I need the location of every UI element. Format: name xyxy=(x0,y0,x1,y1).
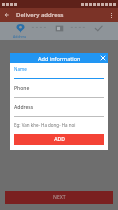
staticText: Eg: Van khe- Ha dong- Ha noi xyxy=(14,122,76,128)
staticText: Address xyxy=(13,34,27,39)
staticText: NEXT xyxy=(53,194,66,201)
button[interactable]: Close xyxy=(98,53,108,63)
button[interactable] xyxy=(79,24,118,33)
staticText: Add information xyxy=(38,55,81,62)
button[interactable]: NEXT xyxy=(5,191,113,204)
staticText: Name xyxy=(14,66,27,72)
button[interactable]: Back xyxy=(0,8,14,22)
button[interactable]: Address xyxy=(0,24,40,39)
staticText: Phone xyxy=(14,85,30,92)
button[interactable]: More options xyxy=(104,8,118,22)
staticText: Delivery address xyxy=(16,11,64,19)
button[interactable]: ADD xyxy=(14,134,104,145)
staticText: Address xyxy=(14,104,34,111)
staticText: ADD xyxy=(54,136,65,143)
button[interactable] xyxy=(40,24,79,33)
